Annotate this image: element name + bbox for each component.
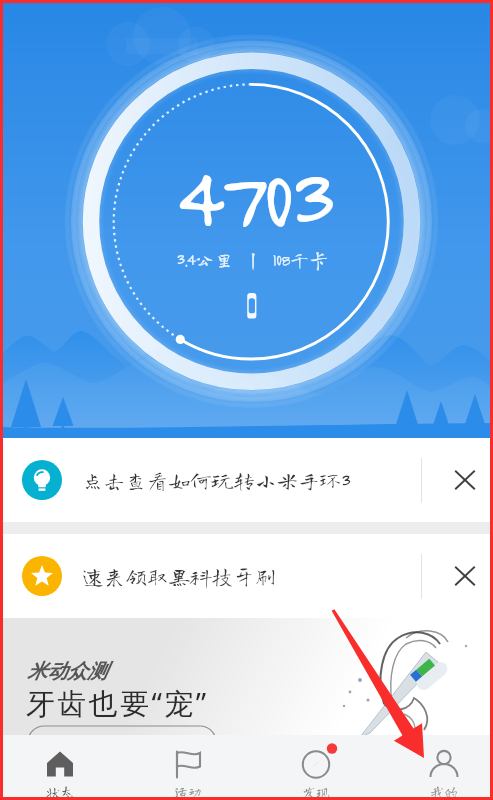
staticText: 活动 — [174, 785, 202, 799]
staticText: 点击查看如何玩转小米手环3 — [82, 469, 350, 491]
button[interactable]: Status — [0, 735, 122, 800]
button[interactable]: 米动众测 — [0, 618, 493, 735]
staticText: 牙齿也要“宠” — [26, 683, 209, 723]
staticText: 状态 — [46, 785, 74, 799]
staticText: 我的 — [430, 785, 458, 799]
button[interactable]: Discover — [254, 735, 378, 800]
button[interactable]: Close — [422, 438, 493, 522]
staticText: 4703 — [7, 143, 493, 247]
button[interactable]: Activity — [126, 735, 250, 800]
staticText: 3.4公里 丨 108千卡 — [6, 250, 493, 269]
button[interactable]: 速来领取黑科技牙刷 — [0, 534, 493, 618]
staticText: 速来领取黑科技牙刷 — [82, 565, 277, 587]
button[interactable]: Close — [422, 534, 493, 618]
staticText: 发现 — [302, 785, 330, 799]
button[interactable]: Profile — [382, 735, 493, 800]
button[interactable]: 点击查看如何玩转小米手环3 — [0, 438, 493, 522]
staticText: 米动众测 — [27, 659, 107, 684]
